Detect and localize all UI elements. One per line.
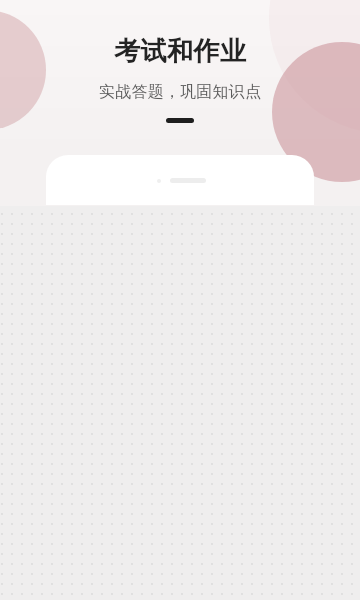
staticText: 考试和作业 — [114, 35, 246, 68]
button[interactable] — [46, 155, 314, 205]
button[interactable]: Drag handle — [166, 118, 194, 123]
staticText: 实战答题，巩固知识点 — [99, 82, 261, 102]
